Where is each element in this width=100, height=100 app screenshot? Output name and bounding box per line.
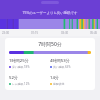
staticText: 14分 (50, 75, 59, 81)
staticText: レム睡眠 12% (12, 82, 30, 86)
staticText: 23:00 (2, 31, 10, 35)
button[interactable]: 52分 (9, 75, 50, 86)
button[interactable]: 4時間53分 (50, 58, 91, 69)
staticText: 05:45 (90, 31, 98, 35)
staticText: 4時間53分 (50, 58, 70, 64)
staticText: 7時間50分 (9, 41, 91, 48)
staticText: 52分 (9, 75, 18, 81)
button[interactable]: 1時間25分 (9, 58, 50, 69)
button[interactable]: 7時間50分 (5, 38, 95, 90)
staticText: 覚醒状態 (53, 82, 65, 86)
staticText: 03:30 (61, 31, 69, 35)
button[interactable] (41, 1, 59, 4)
staticText: 75%のユーザーよりも良い睡眠です (0, 10, 100, 15)
staticText: 01:15 (31, 31, 39, 35)
staticText: 浅い睡眠 63% (53, 65, 71, 69)
button[interactable]: 14分 (50, 75, 91, 86)
staticText: 1時間25分 (9, 58, 29, 64)
staticText: 深い睡眠 18% (12, 65, 30, 69)
button[interactable]: 睡眠グラフ (0, 19, 100, 29)
